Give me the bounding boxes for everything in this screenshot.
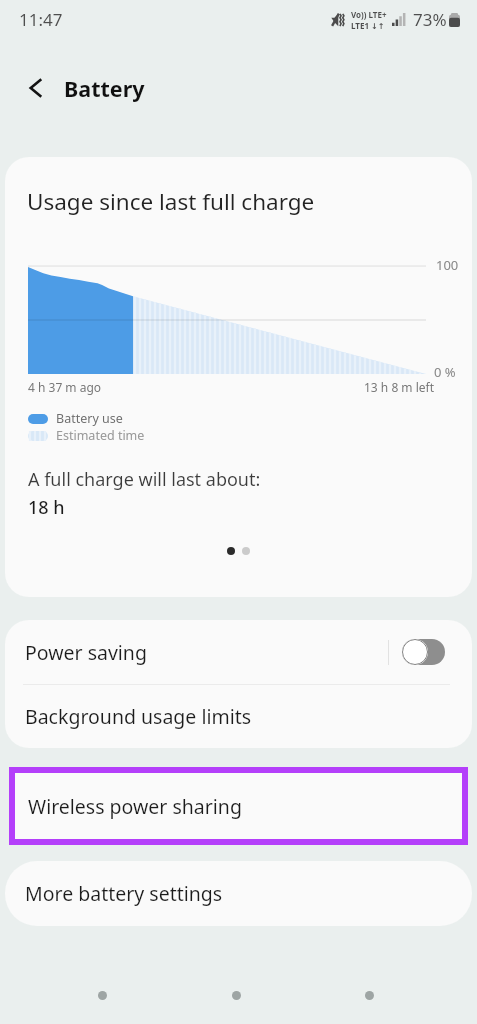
button[interactable]: Wireless power sharing — [15, 773, 462, 839]
staticText: Background usage limits — [25, 703, 252, 730]
button[interactable]: Power saving toggle — [402, 639, 445, 665]
staticText: 18 h — [28, 495, 65, 520]
staticText: 0 % — [434, 363, 456, 381]
staticText: A full charge will last about: — [28, 467, 261, 492]
button[interactable]: Power saving — [5, 620, 472, 684]
staticText: 13 h 8 m left — [364, 379, 435, 395]
staticText: Battery use — [56, 410, 123, 427]
button[interactable]: Background usage limits — [5, 685, 472, 748]
staticText: Usage since last full charge — [27, 186, 315, 217]
staticText: 4 h 37 m ago — [28, 379, 102, 395]
staticText: LTE1 ↓↑ — [351, 20, 385, 31]
staticText: Estimated time — [56, 427, 145, 444]
button[interactable]: Recents — [80, 973, 124, 1017]
button[interactable]: Home — [214, 973, 258, 1017]
button[interactable]: Back — [347, 973, 391, 1017]
staticText: 100 — [436, 256, 459, 274]
staticText: Power saving — [25, 639, 147, 666]
staticText: Vo)) LTE+ — [351, 9, 387, 20]
button[interactable]: Back — [19, 71, 53, 105]
staticText: More battery settings — [25, 880, 223, 907]
button[interactable]: More battery settings — [5, 861, 472, 926]
staticText: Wireless power sharing — [28, 793, 242, 820]
staticText: 11:47 — [19, 8, 63, 31]
staticText: Battery — [64, 74, 145, 103]
staticText: 73% — [413, 8, 447, 31]
